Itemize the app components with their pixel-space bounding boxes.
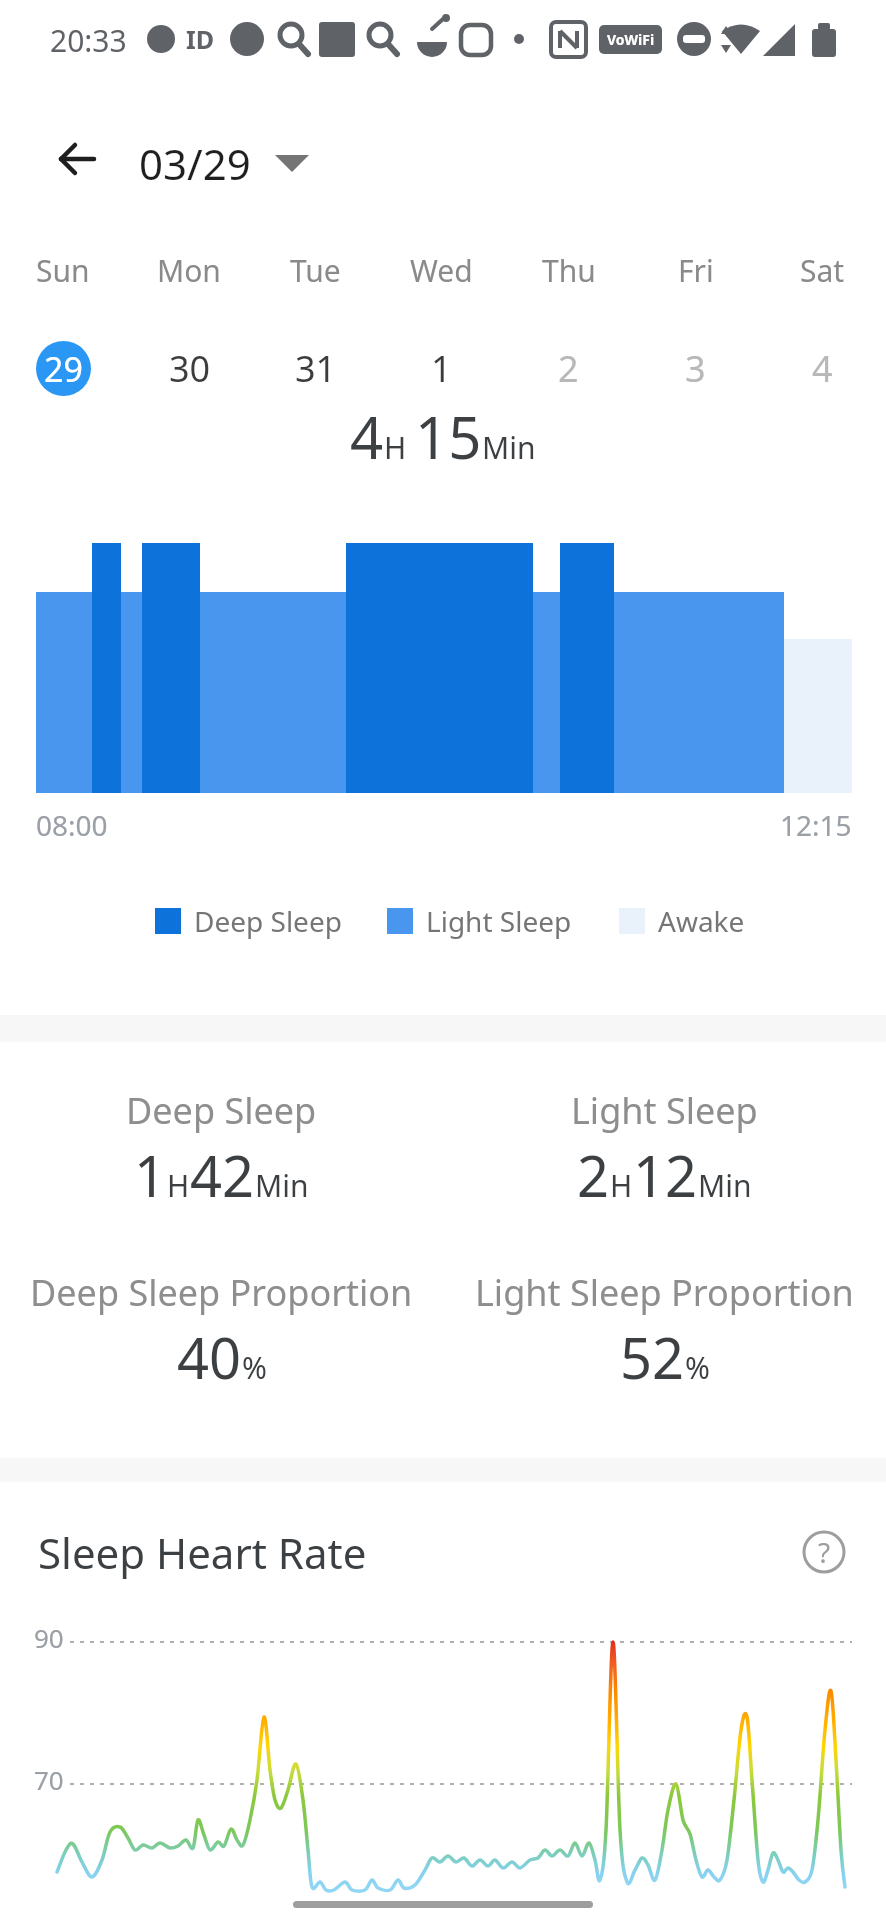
staticText: 1 — [431, 344, 452, 393]
button[interactable]: 2 — [541, 341, 596, 396]
staticText: Fri — [678, 250, 714, 291]
button[interactable]: 3 — [668, 341, 723, 396]
staticText: Deep Sleep — [126, 1086, 317, 1135]
button[interactable]: 1 — [414, 341, 469, 396]
staticText: Light Sleep — [571, 1086, 758, 1135]
staticText: Thu — [542, 250, 596, 291]
staticText: 2 — [558, 344, 579, 393]
staticText: Min — [482, 427, 536, 468]
staticText: Sat — [800, 250, 845, 291]
staticText: 4 — [812, 344, 833, 393]
staticText: % — [242, 1347, 267, 1388]
staticText: 3 — [685, 344, 706, 393]
staticText: 31 — [295, 344, 337, 393]
staticText: 03/29 — [139, 135, 251, 192]
staticText: 2 — [577, 1137, 610, 1213]
button[interactable]: 31 — [288, 341, 343, 396]
staticText: 4 — [350, 397, 384, 472]
staticText: Sun — [36, 250, 90, 291]
staticText: Deep Sleep Proportion — [30, 1268, 413, 1317]
staticText: Light Sleep Proportion — [475, 1268, 854, 1317]
button[interactable]: 4 — [795, 341, 850, 396]
staticText: Light Sleep — [426, 902, 572, 940]
staticText: 20:33 — [50, 20, 127, 60]
staticText: 12:15 — [780, 806, 852, 844]
button[interactable]: 29 — [36, 341, 91, 396]
staticText: Mon — [157, 250, 221, 291]
staticText: 08:00 — [36, 806, 108, 844]
staticText: H — [167, 1165, 190, 1206]
staticText: Sleep Heart Rate — [38, 1524, 367, 1581]
staticText: % — [685, 1347, 710, 1388]
staticText: 42 — [190, 1137, 255, 1213]
button[interactable]: 30 — [162, 341, 217, 396]
staticText: Min — [255, 1165, 309, 1206]
staticText: ID — [186, 22, 215, 56]
staticText: Tue — [290, 250, 341, 291]
staticText: 52 — [620, 1319, 685, 1395]
button[interactable]: 03/29 — [120, 131, 309, 195]
staticText: H — [384, 427, 407, 468]
staticText: 1 — [134, 1137, 167, 1213]
staticText: Deep Sleep — [194, 902, 342, 940]
staticText: H — [610, 1165, 633, 1206]
staticText: 29 — [44, 346, 83, 392]
staticText: 90 — [34, 1620, 64, 1652]
staticText: ? — [818, 1533, 831, 1571]
staticText: Min — [698, 1165, 752, 1206]
staticText: VoWiFi — [607, 30, 655, 49]
staticText: 40 — [177, 1319, 242, 1395]
button[interactable]: ? — [798, 1526, 850, 1578]
staticText: 15 — [415, 397, 482, 472]
staticText: 12 — [633, 1137, 698, 1213]
staticText: 70 — [34, 1762, 64, 1794]
button[interactable] — [46, 131, 110, 195]
staticText: Awake — [658, 902, 745, 940]
staticText: 30 — [169, 344, 211, 393]
staticText: Wed — [410, 250, 473, 291]
